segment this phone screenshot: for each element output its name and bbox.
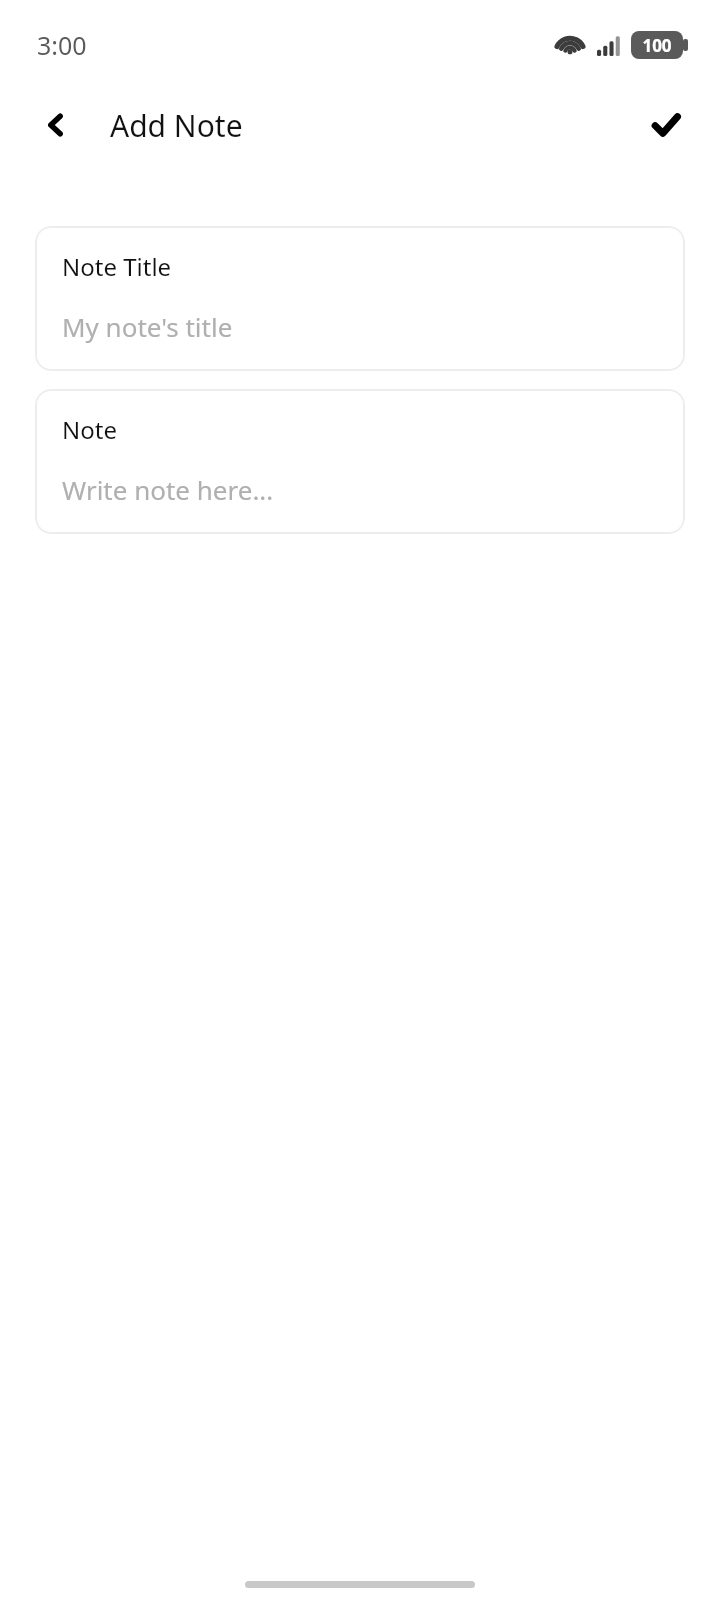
- button[interactable]: Save note: [636, 95, 696, 155]
- staticText: 3:00: [37, 28, 87, 62]
- button[interactable]: Note Title: [35, 226, 685, 371]
- staticText: Add Note: [110, 105, 243, 146]
- staticText: Note: [62, 413, 117, 446]
- staticText: 100: [642, 34, 672, 57]
- staticText: Note Title: [62, 250, 172, 283]
- button[interactable]: Note: [35, 389, 685, 534]
- button[interactable]: Back: [26, 95, 86, 155]
- staticText: Write note here...: [62, 472, 274, 507]
- staticText: My note's title: [62, 309, 233, 344]
